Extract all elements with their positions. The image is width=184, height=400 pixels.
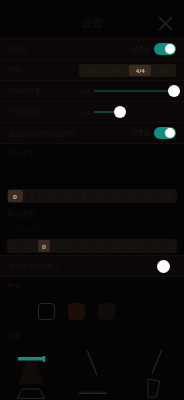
staticText: 样式 — [8, 282, 21, 290]
button[interactable]: 4/4 — [129, 65, 151, 76]
button[interactable]: Style 2 — [68, 303, 85, 320]
button[interactable]: 节拍 — [0, 60, 184, 80]
staticText: 节拍器 — [8, 45, 28, 53]
staticText: C — [13, 243, 17, 250]
button[interactable]: 节拍器音量 — [0, 81, 184, 101]
button[interactable]: Metronome sound 1 — [0, 345, 62, 400]
staticText: 3/4 — [112, 67, 121, 74]
button[interactable] — [94, 104, 174, 120]
staticText: D — [42, 243, 47, 250]
staticText: D — [13, 193, 18, 200]
button[interactable]: 节拍器 — [0, 39, 184, 59]
staticText: A — [116, 193, 120, 200]
button[interactable]: 播放/录音时节拍器声音 — [0, 123, 184, 143]
button[interactable]: D — [38, 240, 50, 252]
staticText: 100 — [81, 88, 91, 95]
staticText: 音色 — [8, 333, 21, 341]
staticText: A — [56, 243, 60, 250]
staticText: BEX — [164, 193, 174, 200]
staticText: A — [140, 243, 144, 250]
staticText: 节拍器音量 — [8, 87, 41, 95]
staticText: 显示乐谱循环标记 — [8, 262, 60, 270]
staticText: 120 — [81, 109, 91, 116]
staticText: D — [30, 193, 35, 200]
button[interactable]: Style 1 — [38, 303, 55, 320]
staticText: G — [98, 243, 103, 250]
staticText: 节拍 — [8, 66, 21, 74]
staticText: G — [27, 243, 32, 250]
staticText: 节拍器速度 — [8, 108, 41, 116]
staticText: 已开启 — [132, 45, 150, 53]
staticText: 和弦设置 — [8, 210, 34, 218]
staticText: M — [126, 243, 131, 250]
staticText: C — [48, 193, 52, 200]
button[interactable]: Switch on — [154, 43, 176, 55]
staticText: 6/8 — [160, 67, 169, 74]
staticText: G — [132, 193, 137, 200]
button[interactable]: Metronome sound 3 — [123, 345, 184, 400]
button[interactable]: Switch on — [154, 127, 176, 139]
staticText: D — [112, 243, 117, 250]
button[interactable]: Style 3 — [98, 303, 115, 320]
staticText: 已开启 — [132, 129, 150, 137]
staticText: 4/4 — [136, 67, 145, 74]
staticText: 播放/录音时节拍器声音 — [8, 129, 76, 138]
staticText: G — [149, 193, 154, 200]
button[interactable] — [94, 83, 174, 99]
button[interactable]: Toggle — [157, 260, 170, 273]
staticText: 设置 — [81, 16, 103, 30]
staticText: B — [82, 193, 86, 200]
staticText: 2/4 — [87, 67, 96, 74]
button[interactable]: D — [8, 190, 23, 202]
staticText: N — [168, 243, 173, 250]
staticText: B — [154, 243, 158, 250]
button[interactable]: Metronome sound 2 — [62, 345, 123, 400]
button[interactable]: Close — [152, 10, 178, 36]
button[interactable]: 显示乐谱循环标记 — [0, 256, 184, 276]
staticText: 音乐设置 — [8, 149, 34, 157]
button[interactable]: 节拍器速度 — [0, 102, 184, 122]
